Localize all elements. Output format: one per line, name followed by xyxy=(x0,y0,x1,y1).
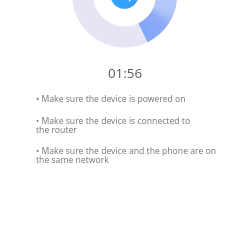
staticText: • Make sure the device is powered on xyxy=(36,93,186,105)
staticText: 01:56 xyxy=(0,64,250,82)
other: Connecting progress xyxy=(0,0,250,250)
staticText: • Make sure the device is connected to t… xyxy=(36,115,191,136)
staticText: • Make sure the device and the phone are… xyxy=(36,145,217,166)
